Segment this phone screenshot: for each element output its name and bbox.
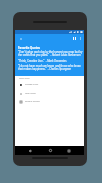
staticText: "I do not have much we know, and those w… bbox=[18, 64, 81, 68]
button[interactable]: Default Priority bbox=[15, 97, 84, 106]
staticText: that makes happiness." - Charles Spurgeo… bbox=[18, 67, 72, 71]
button[interactable]: Item Share bbox=[15, 89, 84, 98]
staticText: Favorite Quotes bbox=[18, 46, 40, 50]
button[interactable]: Home bbox=[45, 146, 55, 155]
staticText: Change Color bbox=[25, 83, 39, 86]
button[interactable]: More options bbox=[77, 35, 84, 42]
staticText: the seeds that you plant." - Robert Loui… bbox=[18, 53, 81, 57]
staticText: Default Priority bbox=[25, 100, 40, 103]
staticText: Item Share bbox=[25, 92, 36, 95]
staticText: "Think, Creative Live." - Mark Decorates bbox=[18, 59, 67, 63]
staticText: "Don't judge each day by the harvest you… bbox=[18, 50, 83, 54]
button[interactable]: Recents bbox=[64, 146, 74, 155]
button[interactable]: Change Color bbox=[15, 80, 84, 89]
staticText: Select action bbox=[19, 77, 30, 79]
button[interactable]: Navigation menu bbox=[17, 35, 24, 42]
button[interactable]: Sort bbox=[71, 35, 78, 42]
button[interactable]: Back bbox=[25, 146, 35, 155]
